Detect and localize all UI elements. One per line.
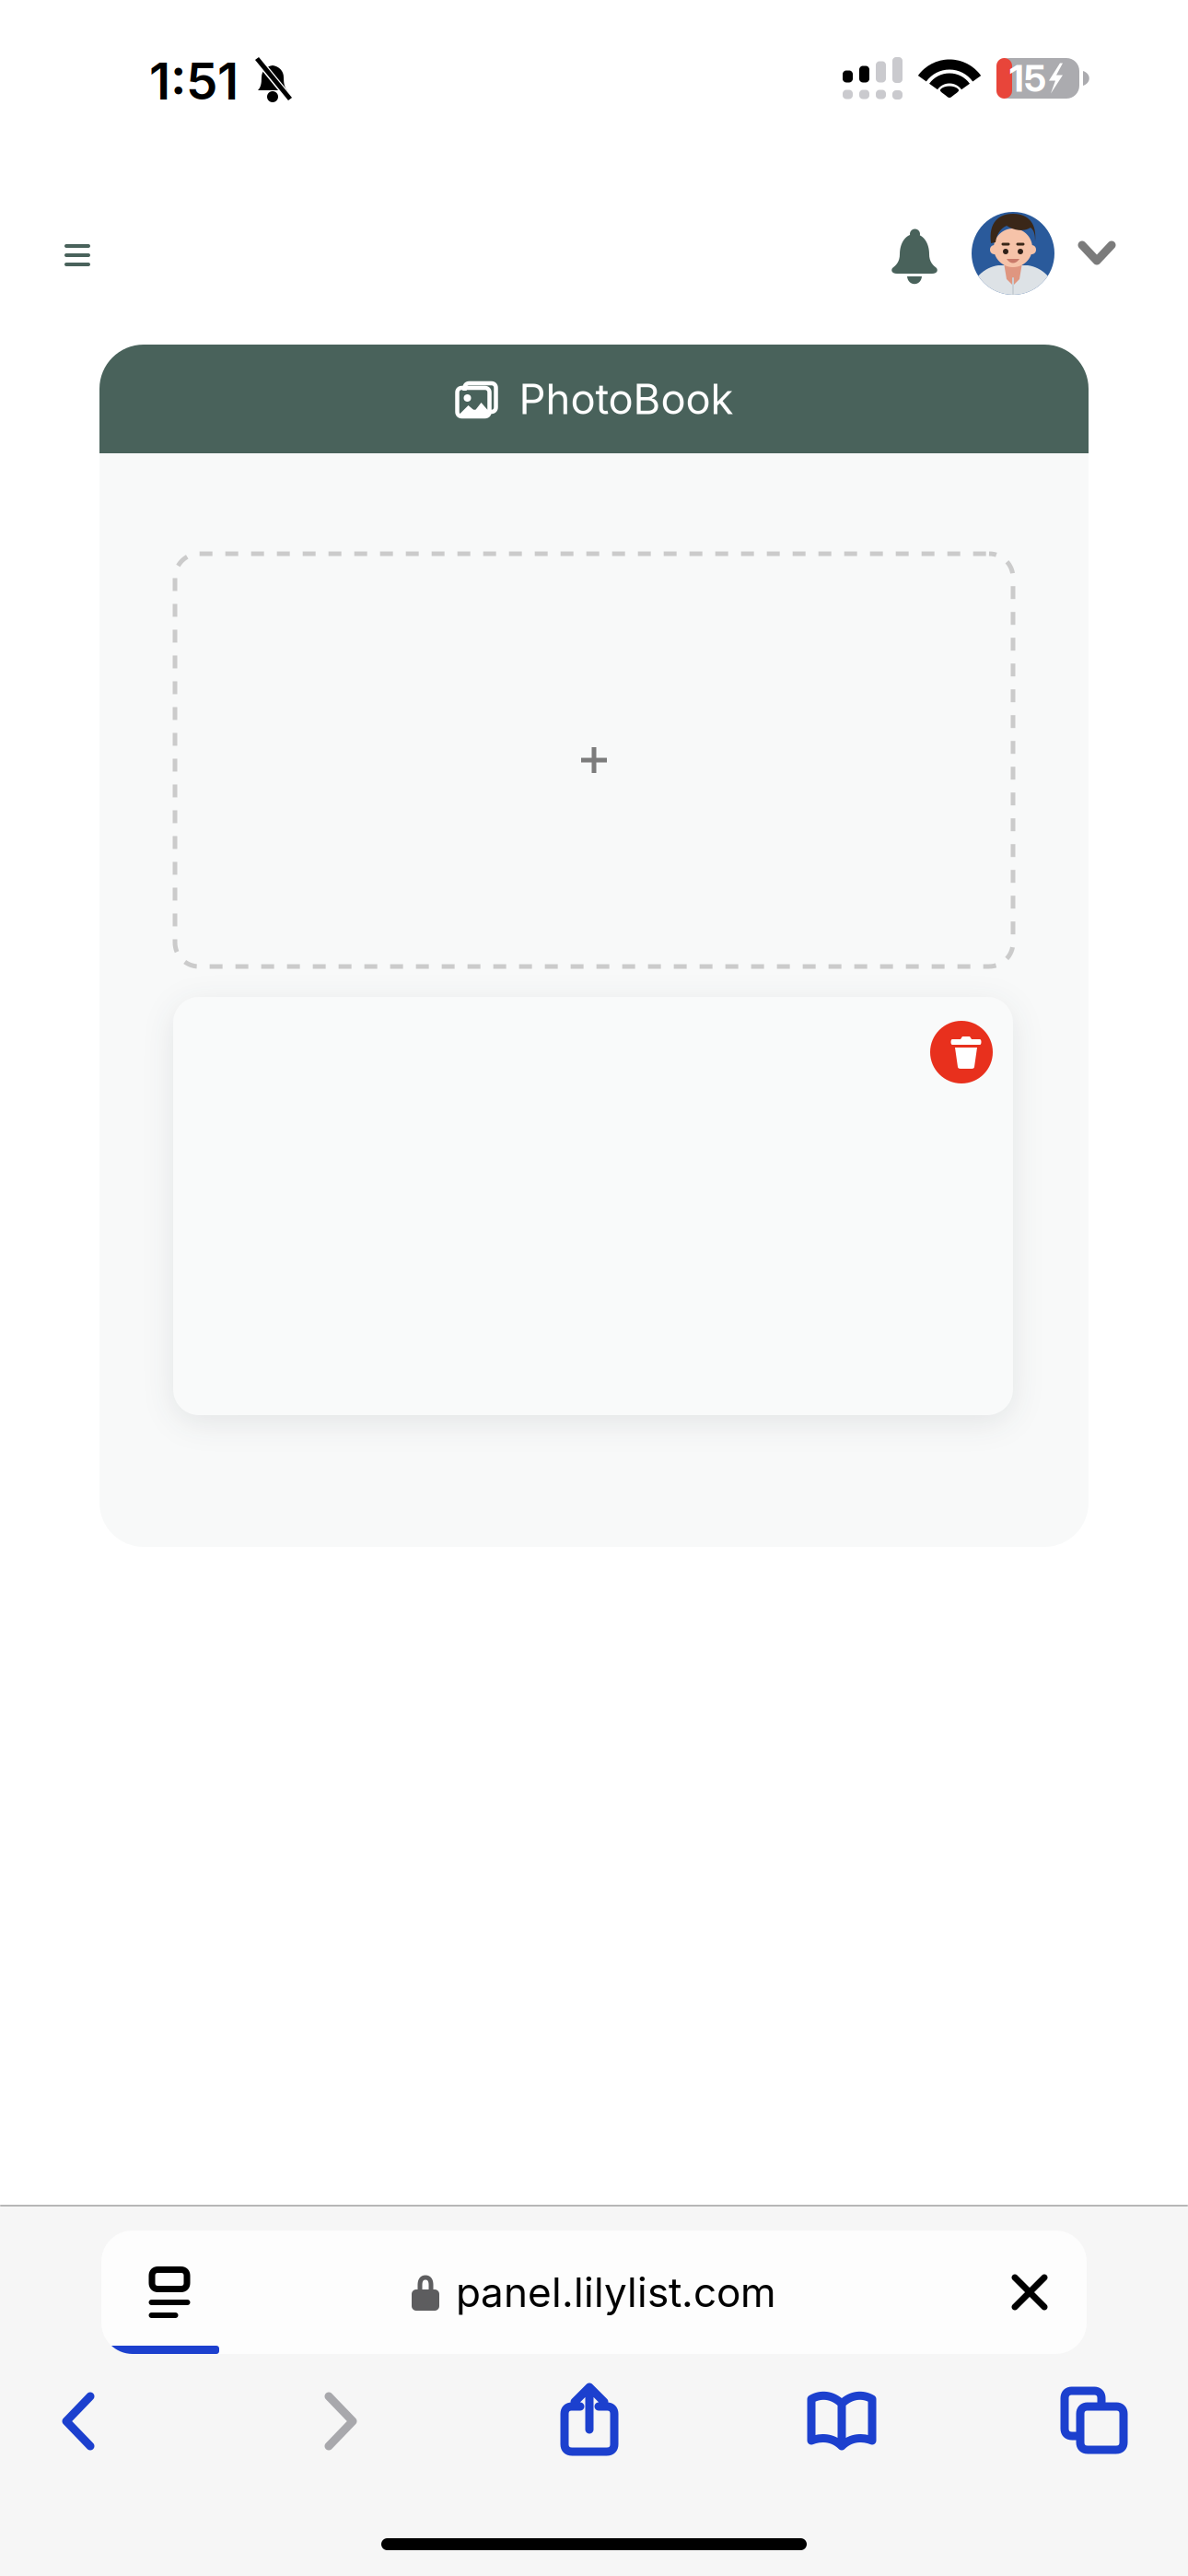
button[interactable]: Bookmarks (768, 2361, 915, 2481)
button[interactable]: Forward (265, 2360, 413, 2480)
button[interactable]: Notifications (879, 219, 950, 291)
button[interactable]: Delete photo (919, 1010, 1004, 1095)
staticText: 15 (1009, 56, 1046, 101)
button[interactable]: Share (516, 2359, 663, 2479)
button[interactable]: Menu (43, 221, 111, 289)
staticText: PhotoBook (519, 374, 734, 424)
staticText: panel.lilylist.com (456, 2268, 776, 2317)
button[interactable]: Show Reader (101, 2231, 238, 2354)
button[interactable]: Stop loading (973, 2231, 1087, 2354)
button[interactable]: Account menu (1062, 218, 1132, 288)
button[interactable]: Account (968, 208, 1058, 299)
staticText: 1:51 (149, 51, 239, 111)
button[interactable]: Back (6, 2360, 154, 2480)
button[interactable]: Tabs (1020, 2360, 1168, 2480)
button[interactable]: Add photo (175, 554, 1013, 966)
